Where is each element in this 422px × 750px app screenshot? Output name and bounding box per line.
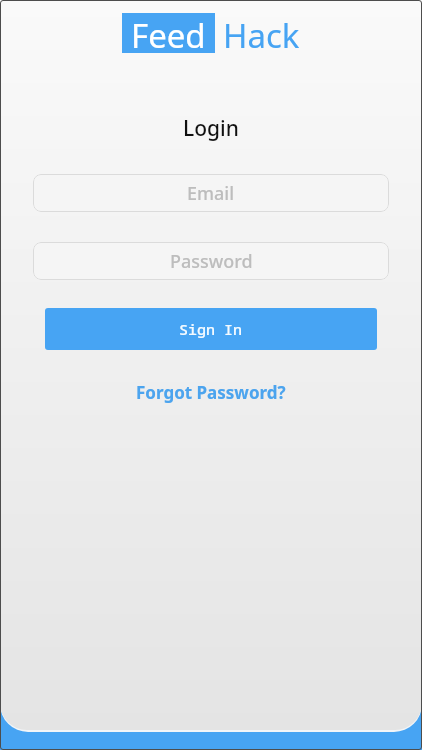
- button[interactable]: Sign In: [45, 308, 377, 350]
- button[interactable]: Forgot Password?: [136, 381, 286, 404]
- staticText: Feed: [131, 13, 206, 53]
- staticText: Sign In: [179, 319, 243, 339]
- staticText: Email: [187, 181, 235, 206]
- staticText: Login: [183, 114, 239, 143]
- staticText: Password: [170, 249, 253, 274]
- button[interactable]: Password: [33, 242, 389, 280]
- button[interactable]: Email: [33, 174, 389, 212]
- staticText: Hack: [223, 13, 300, 53]
